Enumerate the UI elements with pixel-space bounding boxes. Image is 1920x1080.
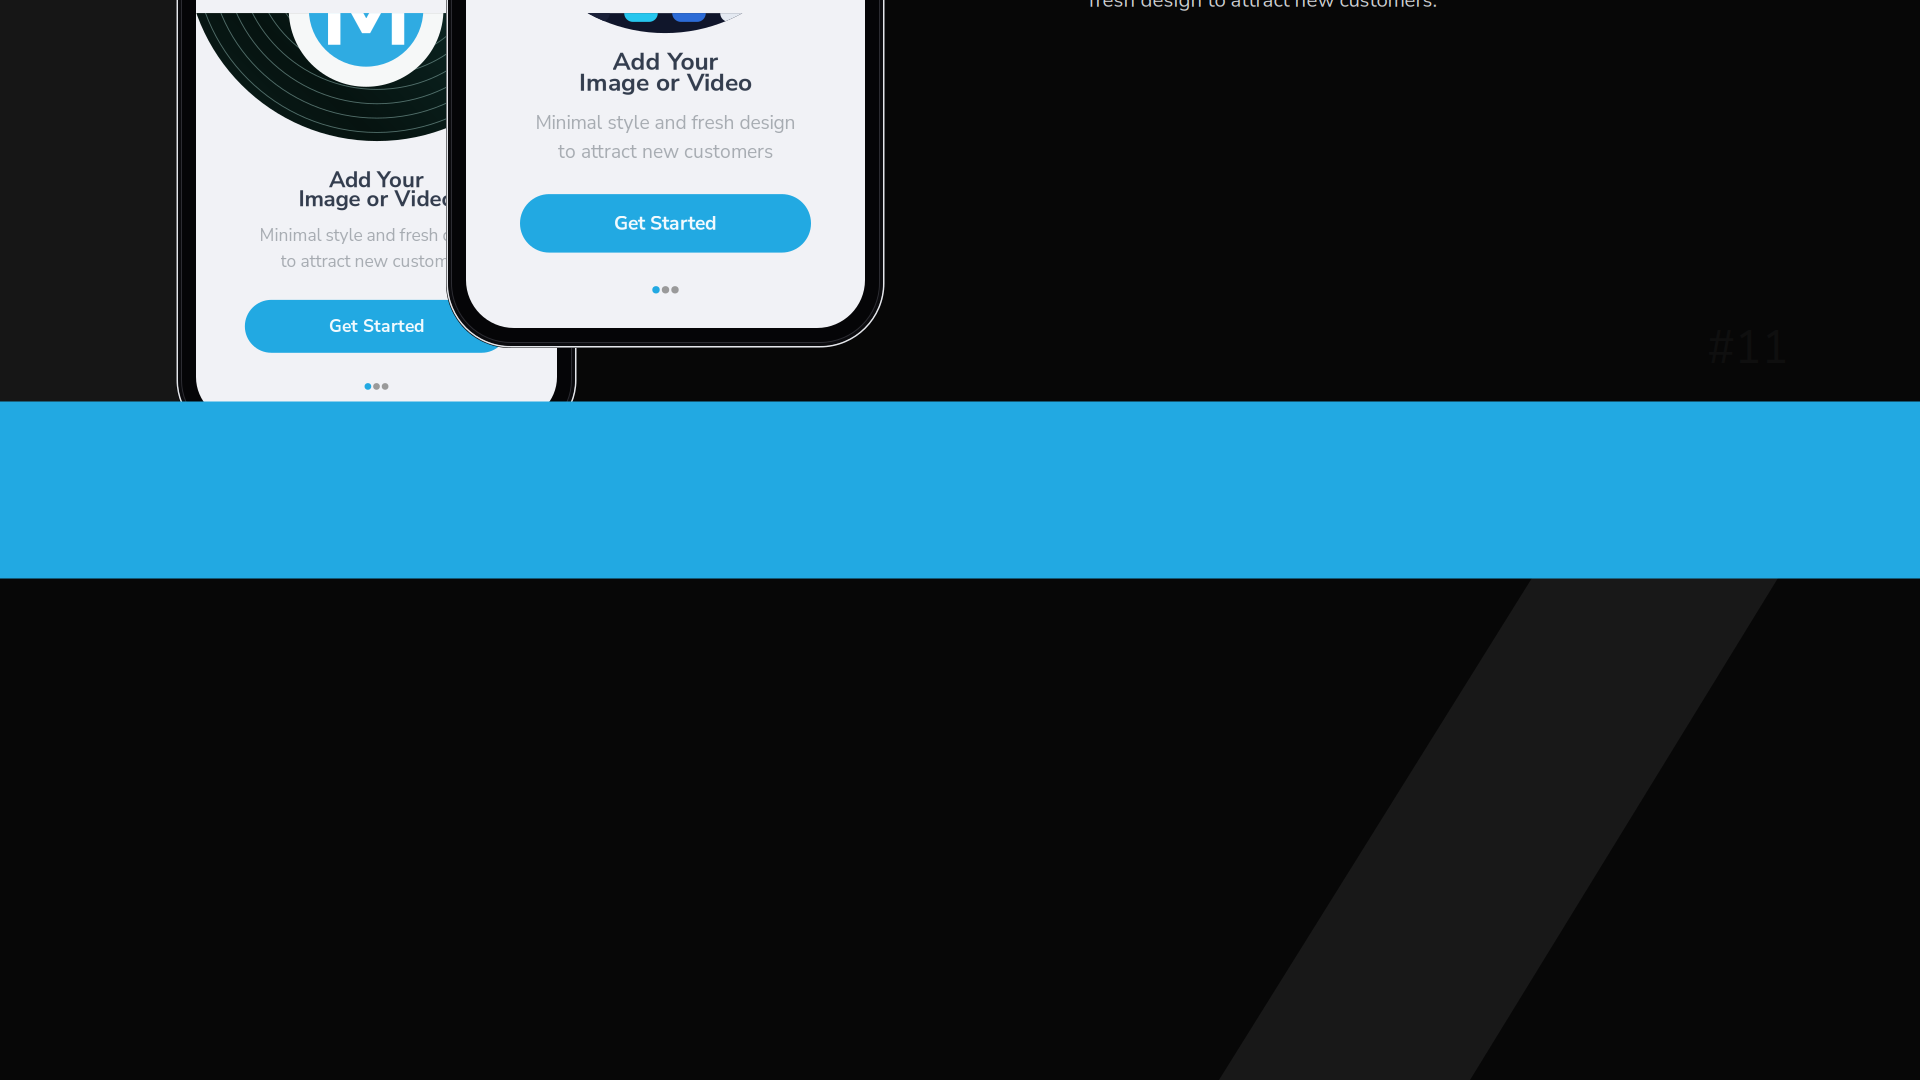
staticText: M xyxy=(320,0,413,83)
staticText: Add Your xyxy=(612,45,718,78)
staticText: Image or Video xyxy=(579,66,752,99)
staticText: fresh design to attract new customers. xyxy=(1088,0,1437,14)
staticText: Minimal style and fresh design xyxy=(535,109,795,136)
button[interactable]: Get Started xyxy=(245,300,508,353)
staticText: Get Started xyxy=(329,314,424,338)
staticText: Minimal style and fresh design xyxy=(259,223,493,247)
staticText: Image or Video xyxy=(298,184,454,214)
staticText: to attract new customers xyxy=(280,250,472,273)
staticText: to attract new customers xyxy=(558,138,773,165)
staticText: Add Your xyxy=(329,165,424,195)
button[interactable]: Get Started xyxy=(520,194,811,253)
staticText: Get Started xyxy=(614,210,717,236)
